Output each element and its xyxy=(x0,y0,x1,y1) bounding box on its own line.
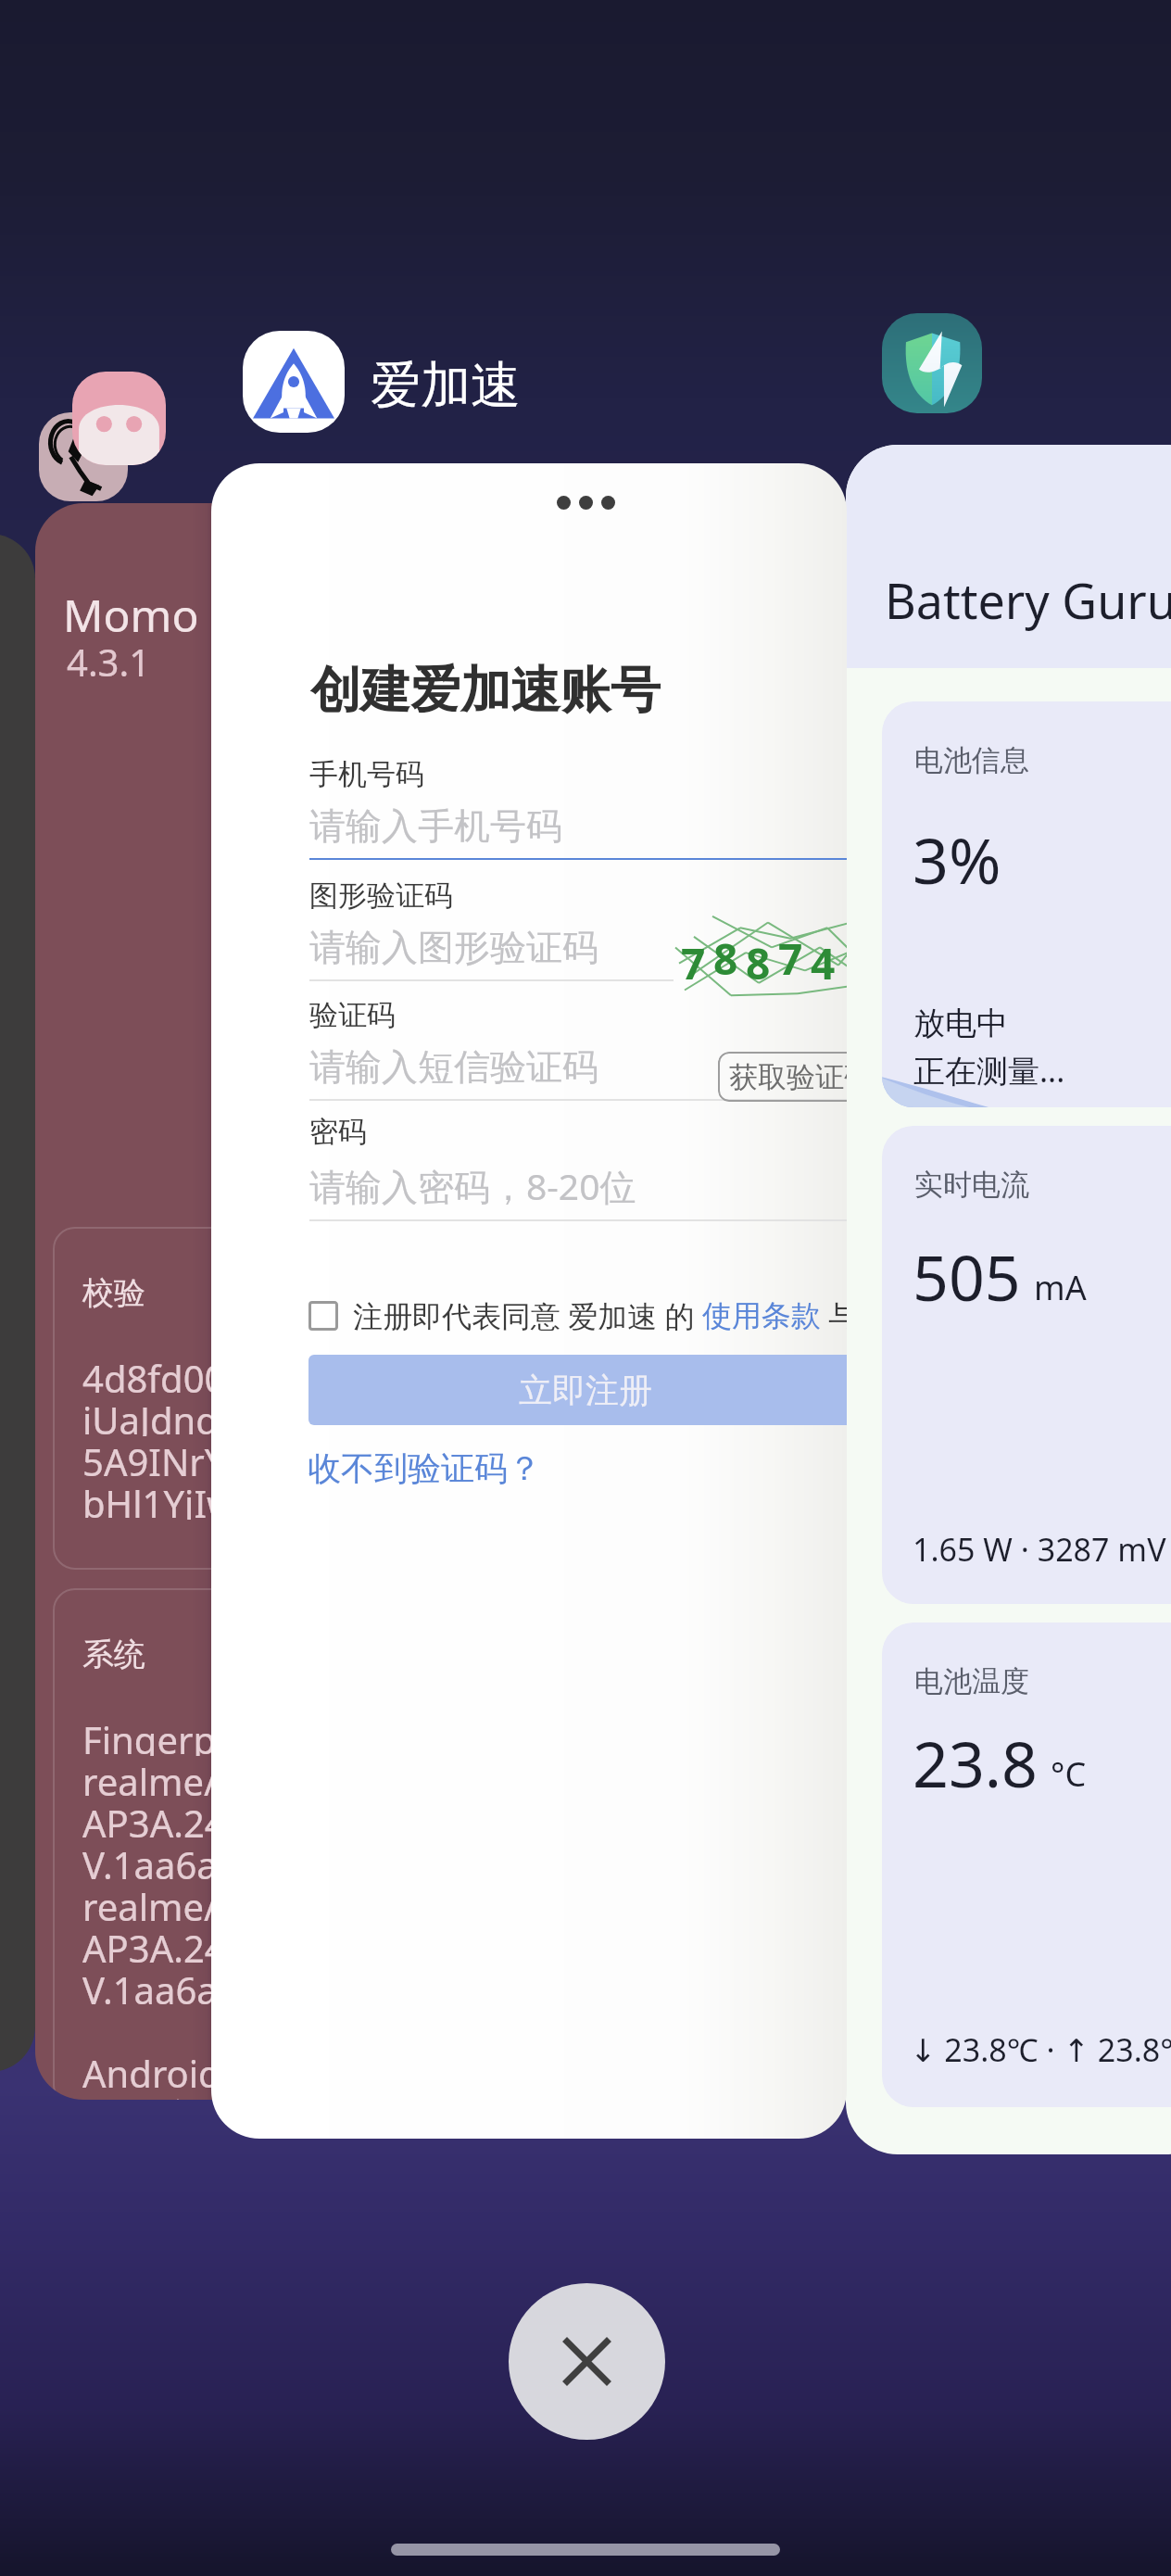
staticText: 注册即代表同意 爱加速 的 xyxy=(353,1295,702,1336)
button[interactable]: 电池温度 xyxy=(882,1623,1171,2107)
staticText: 8 xyxy=(746,934,771,992)
staticText: 验证码 xyxy=(309,997,396,1033)
staticText: iUaJdnquk xyxy=(82,1395,261,1436)
button[interactable]: 电池信息 xyxy=(882,701,1171,1107)
staticText: 与 xyxy=(821,1295,847,1336)
button[interactable]: Momo xyxy=(35,503,424,2100)
staticText: 4 xyxy=(811,934,836,992)
staticText: 23.8 xyxy=(913,1720,1038,1806)
staticText: 2024年10月 xyxy=(82,2090,284,2100)
staticText: 8 xyxy=(713,929,738,988)
staticText: bHl1YjIwM xyxy=(82,1478,270,1520)
staticText: Fingerprint xyxy=(82,1714,278,1756)
staticText: realme/RM xyxy=(82,1881,275,1923)
button[interactable]: More options xyxy=(211,463,847,2139)
staticText: 请输入短信验证码 xyxy=(309,1044,598,1090)
staticText: Momo xyxy=(63,585,199,645)
button[interactable]: More options xyxy=(557,496,615,510)
button[interactable]: Momo xyxy=(72,372,166,465)
staticText: realme/RM xyxy=(82,1756,275,1798)
staticText: 校验 xyxy=(82,1273,145,1313)
staticText: 正在测量... xyxy=(913,1049,1065,1092)
staticText: 7 xyxy=(681,934,706,992)
staticText: 4d8fd00a xyxy=(82,1353,246,1395)
staticText: 电池信息 xyxy=(914,742,1029,778)
staticText: 3% xyxy=(913,816,1001,903)
staticText: 请输入手机号码 xyxy=(309,803,562,849)
staticText: 密码 xyxy=(309,1114,367,1150)
staticText: 7 xyxy=(778,929,803,988)
button[interactable] xyxy=(0,534,35,2072)
staticText: 1.65 W · 3287 mV xyxy=(913,1528,1166,1571)
staticText: 立即注册 xyxy=(519,1370,652,1411)
button[interactable]: Battery Guru xyxy=(882,313,982,413)
staticText: AP3A.2410 xyxy=(82,1923,269,1964)
button[interactable]: 实时电流 xyxy=(882,1126,1171,1604)
staticText: 获取验证码 xyxy=(729,1059,847,1095)
staticText: Battery Guru xyxy=(885,567,1171,633)
button[interactable]: 使用条款 xyxy=(702,1297,821,1334)
button[interactable]: Battery Guru xyxy=(846,445,1171,2154)
button[interactable]: 收不到验证码？ xyxy=(308,1447,541,1489)
button[interactable]: 爱加速 xyxy=(243,331,345,433)
staticText: 5A9INrYg xyxy=(82,1436,247,1478)
staticText: 4.3.1 xyxy=(67,637,151,687)
button[interactable]: 立即注册 xyxy=(308,1355,847,1425)
button[interactable] xyxy=(308,1301,338,1331)
staticText: Android 15 xyxy=(82,2048,273,2090)
staticText: 实时电流 xyxy=(914,1167,1029,1203)
button[interactable]: 获取验证码 xyxy=(718,1052,847,1102)
staticText: 创建爱加速账号 xyxy=(310,659,661,722)
staticText: 电池温度 xyxy=(914,1663,1029,1699)
button[interactable]: App xyxy=(39,412,128,501)
staticText: 图形验证码 xyxy=(309,878,453,914)
staticText: °C xyxy=(1051,1751,1087,1797)
staticText: mA xyxy=(1034,1265,1087,1310)
staticText: AP3A.2410 xyxy=(82,1798,269,1839)
staticText: ↓ 23.8℃ · ↑ 23.8℃ xyxy=(910,2028,1171,2071)
staticText: 系统 xyxy=(82,1635,145,1674)
staticText: 爱加速 xyxy=(371,354,521,417)
staticText: V.1aa6aac xyxy=(82,1839,257,1881)
button[interactable]: Clear all xyxy=(509,2283,665,2440)
staticText: 505 xyxy=(913,1233,1021,1320)
staticText: 放电中 xyxy=(913,1004,1008,1043)
staticText: 请输入密码，8-20位 xyxy=(309,1161,636,1210)
staticText: V.1aa6aac xyxy=(82,1964,257,2006)
staticText: 请输入图形验证码 xyxy=(309,925,598,970)
staticText: 手机号码 xyxy=(309,756,424,792)
